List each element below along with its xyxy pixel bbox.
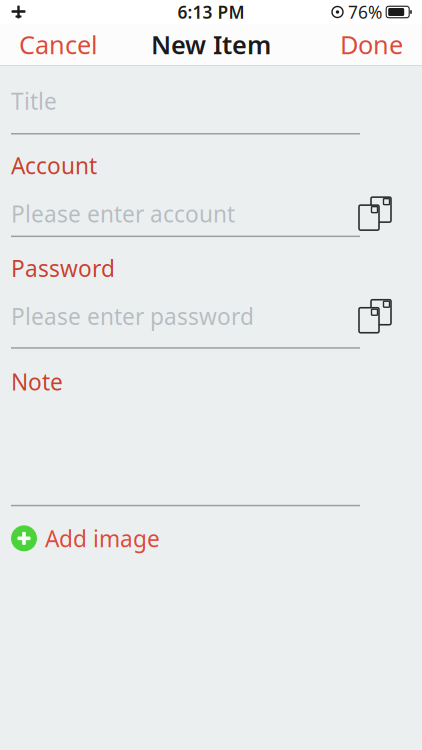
staticText: Title [11,86,57,116]
button[interactable]: Copy account [354,197,396,231]
staticText: Add image [45,523,160,553]
button[interactable]: Copy password [354,299,396,333]
button[interactable]: Add image [0,519,422,557]
staticText: Done [340,28,403,61]
button[interactable]: Cancel [5,20,112,69]
staticText: 6:13 PM [177,0,244,23]
staticText: Please enter password [11,301,254,331]
staticText: Account [11,150,97,181]
staticText: Password [11,253,115,283]
button[interactable]: Done [326,20,417,69]
button[interactable]: Please enter password [0,299,422,333]
staticText: Note [11,367,63,397]
button[interactable]: Title [0,90,422,112]
staticText: Please enter account [11,199,235,229]
button[interactable]: Please enter account [0,197,422,231]
staticText: Cancel [19,28,98,61]
staticText: 76% [348,0,382,23]
staticText: New Item [151,28,271,61]
